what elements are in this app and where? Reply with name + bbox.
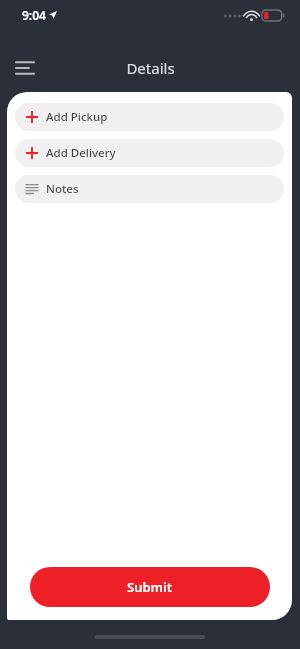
button[interactable]: Submit	[30, 567, 270, 607]
button[interactable]: Add Delivery	[15, 139, 284, 167]
staticText: 9:04	[22, 7, 46, 23]
staticText: Submit	[127, 578, 173, 596]
button[interactable]: Notes	[15, 175, 284, 203]
staticText: Details	[126, 58, 175, 78]
staticText: Notes	[46, 181, 79, 197]
staticText: Add Pickup	[46, 109, 108, 125]
button[interactable]: Add Pickup	[15, 103, 284, 131]
staticText: Add Delivery	[46, 145, 116, 161]
button[interactable]: Menu	[8, 51, 42, 85]
